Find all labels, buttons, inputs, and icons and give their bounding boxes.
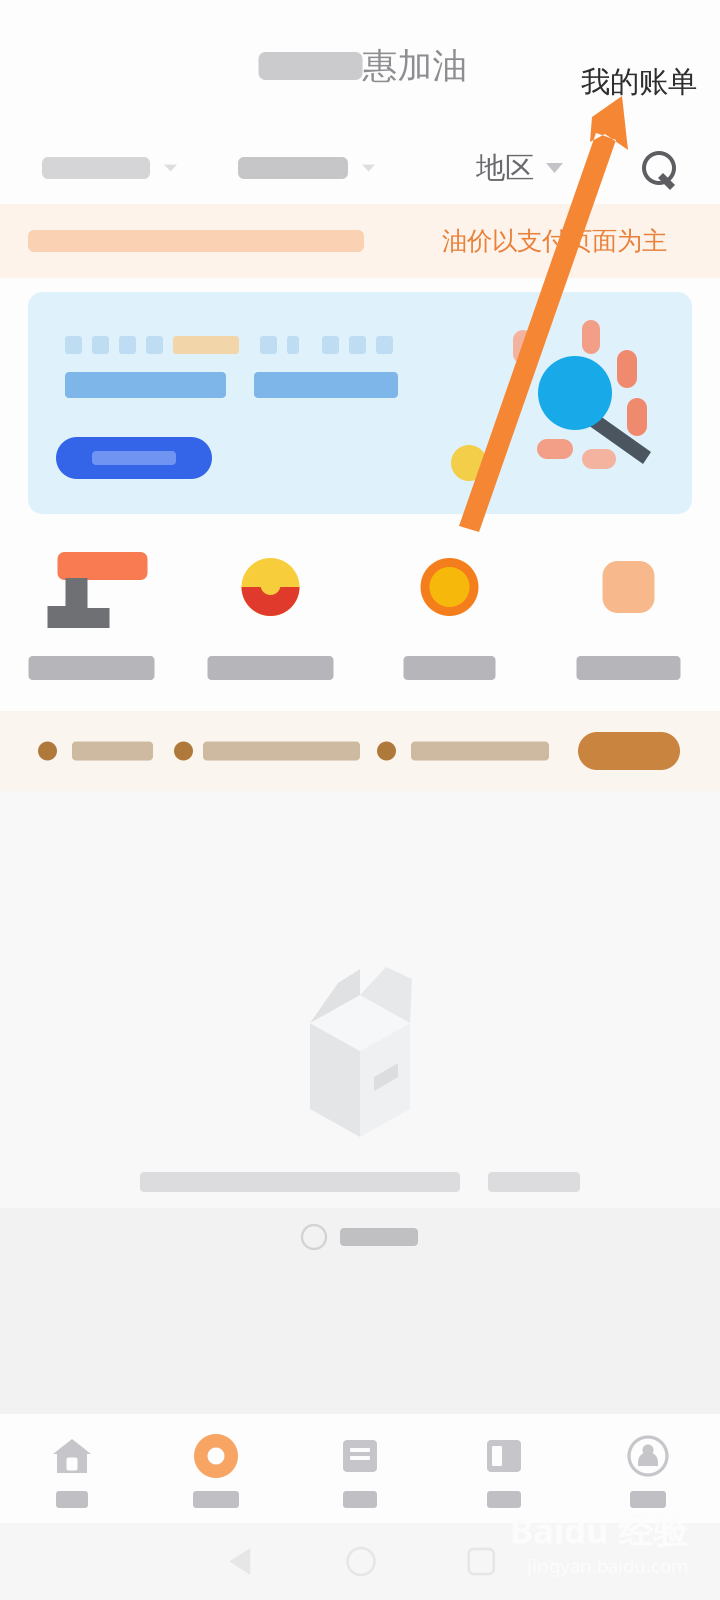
button[interactable]: 搜索 <box>641 132 685 204</box>
button[interactable] <box>432 1414 576 1523</box>
button[interactable]: 领取 <box>578 732 680 770</box>
staticText: 惠加油 <box>362 45 467 87</box>
staticText: Baidu 经验 <box>510 1507 688 1553</box>
button[interactable] <box>42 132 238 204</box>
staticText: 油价以支付页面为主 <box>442 225 667 256</box>
button[interactable] <box>0 1414 144 1523</box>
button[interactable] <box>144 1414 288 1523</box>
button[interactable] <box>576 1414 720 1523</box>
button[interactable] <box>238 132 434 204</box>
button[interactable] <box>181 544 360 680</box>
button[interactable] <box>2 544 181 680</box>
button[interactable] <box>539 544 718 680</box>
button[interactable] <box>360 544 539 680</box>
button[interactable] <box>0 1208 720 1266</box>
staticText: 我的账单 <box>581 64 697 100</box>
staticText: 地区 <box>476 150 534 186</box>
button[interactable] <box>288 1414 432 1523</box>
button[interactable] <box>0 292 720 514</box>
button[interactable]: 地区 <box>476 132 563 204</box>
